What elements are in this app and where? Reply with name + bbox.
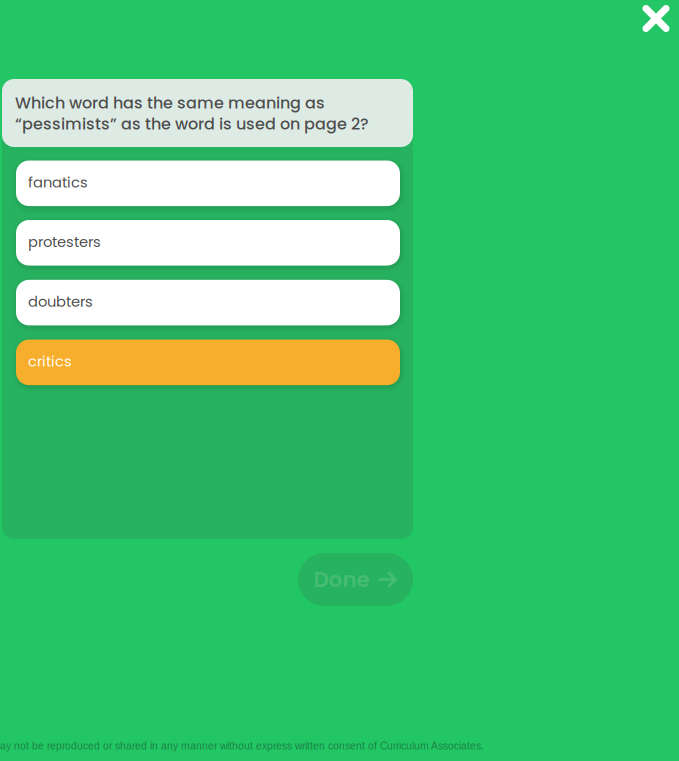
button[interactable]: critics bbox=[16, 340, 400, 385]
button[interactable]: Done bbox=[298, 553, 413, 606]
staticText: critics bbox=[28, 351, 72, 372]
staticText: ay not be reproduced or shared in any ma… bbox=[0, 740, 484, 752]
button[interactable]: Close bbox=[634, 0, 678, 40]
button[interactable]: protesters bbox=[16, 220, 400, 266]
button[interactable]: fanatics bbox=[16, 160, 400, 206]
staticText: Which word has the same meaning as bbox=[15, 92, 325, 114]
staticText: “pessimists” as the word is used on page… bbox=[15, 113, 369, 135]
staticText: fanatics bbox=[28, 172, 88, 192]
button[interactable]: doubters bbox=[16, 280, 400, 325]
staticText: doubters bbox=[28, 291, 93, 312]
staticText: protesters bbox=[28, 231, 101, 252]
staticText: Done bbox=[313, 565, 369, 594]
